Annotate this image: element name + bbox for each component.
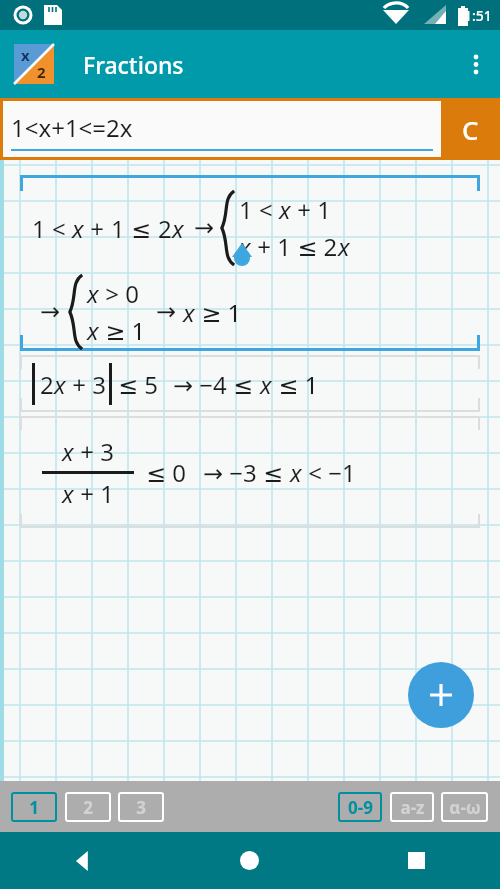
staticText: + 1 bbox=[74, 477, 114, 510]
staticText: x bbox=[183, 296, 195, 329]
staticText: 2 bbox=[158, 212, 172, 245]
staticText: α-ω bbox=[449, 796, 481, 819]
staticText: → −3 ≤ bbox=[203, 456, 290, 489]
staticText: 1<x+1<=2x bbox=[11, 111, 133, 144]
staticText: < bbox=[259, 193, 279, 226]
staticText: x bbox=[260, 368, 272, 401]
button[interactable]: a-z bbox=[390, 792, 434, 822]
button[interactable]: 0-9 bbox=[338, 792, 382, 822]
staticText: ≥ 1 bbox=[99, 314, 146, 347]
staticText: x bbox=[62, 477, 74, 510]
staticText: + bbox=[84, 212, 111, 245]
staticText: x bbox=[72, 212, 84, 245]
staticText: 1:51 bbox=[464, 6, 492, 25]
staticText: ≤ 5 bbox=[118, 368, 159, 401]
button[interactable]: Back bbox=[0, 832, 166, 889]
staticText: ≤ bbox=[131, 212, 158, 245]
staticText: 1 bbox=[239, 193, 259, 226]
button[interactable]: Recents bbox=[333, 832, 500, 889]
staticText: 2 bbox=[40, 368, 54, 401]
staticText: < −1 bbox=[302, 456, 356, 489]
button[interactable]: More options bbox=[452, 40, 500, 88]
staticText: → bbox=[194, 214, 215, 242]
staticText: + 1 bbox=[291, 193, 331, 226]
staticText: x bbox=[172, 212, 184, 245]
staticText: x bbox=[290, 456, 302, 489]
staticText: + 3 bbox=[74, 435, 114, 468]
button[interactable]: Add bbox=[408, 662, 474, 728]
staticText: C bbox=[462, 112, 479, 147]
staticText: x bbox=[87, 314, 99, 347]
button[interactable]: 2 bbox=[20, 355, 480, 412]
staticText: + 1 ≤ 2 bbox=[251, 230, 338, 263]
staticText: x bbox=[239, 230, 251, 263]
button[interactable]: 1 bbox=[11, 792, 57, 822]
staticText: 3 bbox=[136, 796, 146, 819]
button[interactable]: 2 bbox=[65, 792, 111, 822]
button[interactable]: Home bbox=[166, 832, 333, 889]
button[interactable]: α-ω bbox=[441, 792, 488, 822]
staticText: x bbox=[279, 193, 291, 226]
staticText: 1 bbox=[29, 796, 39, 819]
button[interactable]: 3 bbox=[118, 792, 164, 822]
staticText: < bbox=[52, 212, 72, 245]
staticText: x bbox=[338, 230, 350, 263]
staticText: x bbox=[87, 277, 99, 310]
staticText: 1 bbox=[32, 212, 52, 245]
button[interactable]: 1<x+1<=2x bbox=[3, 101, 441, 157]
staticText: x bbox=[54, 368, 66, 401]
staticText: → −4 ≤ bbox=[173, 368, 260, 401]
button[interactable]: x bbox=[20, 416, 480, 528]
staticText: 0-9 bbox=[348, 796, 373, 819]
staticText: Fractions bbox=[83, 49, 184, 80]
button[interactable]: 1 bbox=[20, 175, 480, 351]
staticText: + 3 bbox=[66, 368, 106, 401]
staticText: ≥ 1 bbox=[195, 296, 242, 329]
staticText: 2 bbox=[83, 796, 93, 819]
staticText: 1 bbox=[111, 212, 131, 245]
button[interactable]: C bbox=[441, 98, 500, 160]
staticText: → bbox=[40, 298, 61, 326]
staticText: > 0 bbox=[99, 277, 139, 310]
staticText: → bbox=[156, 298, 177, 326]
staticText: x bbox=[62, 435, 74, 468]
staticText: x bbox=[21, 45, 30, 65]
staticText: ≤ 1 bbox=[272, 368, 319, 401]
staticText: 2 bbox=[37, 62, 46, 82]
staticText: ≤ 0 bbox=[146, 456, 187, 489]
staticText: a-z bbox=[400, 796, 425, 819]
